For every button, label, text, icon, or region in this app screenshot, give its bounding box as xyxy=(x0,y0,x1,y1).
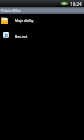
staticText: b xyxy=(5,32,8,38)
button[interactable]: b xyxy=(0,26,84,43)
staticText: Box.net xyxy=(15,34,28,39)
button[interactable]: Moje složky xyxy=(0,14,84,26)
other: Battery xyxy=(61,2,68,5)
staticText: 16:24 xyxy=(70,1,82,7)
staticText: Polaris Office xyxy=(1,9,21,13)
staticText: Moje složky xyxy=(15,18,34,23)
